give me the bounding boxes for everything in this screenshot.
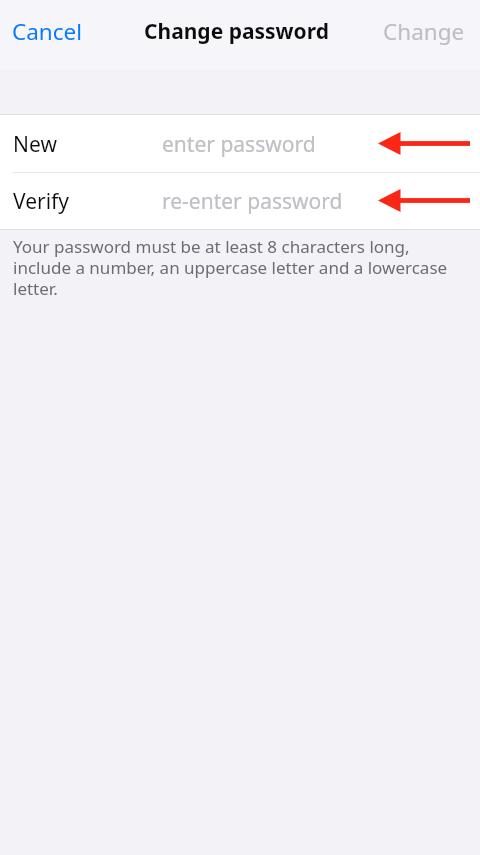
button[interactable]: Change (375, 12, 473, 51)
other: Annotation arrow pointing at New passwor… (378, 132, 470, 155)
staticText: enter password (162, 130, 316, 159)
staticText: Verify (13, 187, 70, 216)
button[interactable]: Verify (0, 173, 480, 229)
staticText: Change password (144, 17, 329, 46)
button[interactable]: Cancel (4, 12, 91, 51)
other: Annotation arrow pointing at Verify pass… (378, 189, 470, 212)
staticText: Change (383, 16, 465, 47)
staticText: Your password must be at least 8 charact… (13, 235, 455, 300)
button[interactable]: New (0, 115, 480, 172)
staticText: re-enter password (162, 187, 343, 216)
staticText: Cancel (12, 16, 83, 47)
staticText: New (13, 130, 57, 159)
